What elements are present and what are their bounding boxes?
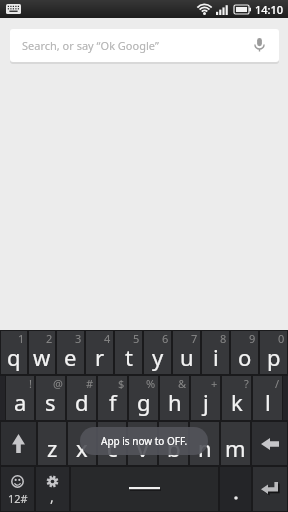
staticText: 4 [104, 331, 111, 346]
button[interactable]: Search, or say “Ok Google” [10, 29, 279, 62]
staticText: 6 [162, 331, 169, 346]
staticText: h [168, 387, 182, 417]
staticText: App is now to OFF. [101, 434, 188, 448]
staticText: x [76, 433, 88, 463]
button[interactable]: q [1, 331, 27, 374]
button[interactable]: f [98, 376, 127, 420]
staticText: % [146, 376, 156, 391]
button[interactable]: a [6, 376, 34, 420]
staticText: c [107, 433, 118, 463]
button[interactable]: x [68, 422, 96, 465]
staticText: 9 [249, 331, 256, 346]
button[interactable]: o [231, 331, 258, 374]
staticText: l [265, 387, 271, 417]
button[interactable]: w [29, 331, 55, 374]
staticText: y [152, 342, 164, 372]
button[interactable]: c [98, 422, 126, 465]
staticText: 5 [133, 331, 140, 346]
button[interactable]: k [222, 376, 251, 420]
staticText: @ [53, 376, 63, 391]
staticText: 3 [75, 331, 82, 346]
staticText: z [47, 433, 58, 463]
staticText: g [137, 387, 151, 417]
staticText: + [211, 376, 218, 391]
staticText: d [75, 387, 89, 417]
staticText: s [45, 387, 56, 417]
staticText: n [198, 433, 212, 463]
button[interactable] [252, 422, 287, 465]
button[interactable]: v [128, 422, 157, 465]
staticText: e [64, 342, 77, 372]
button[interactable]: y [144, 331, 171, 374]
staticText: t [125, 342, 133, 372]
staticText: / [275, 376, 280, 391]
staticText: w [33, 342, 51, 372]
button[interactable]: e [57, 331, 84, 374]
button[interactable]: n [190, 422, 219, 465]
staticText: # [86, 376, 94, 391]
staticText: v [137, 433, 149, 463]
staticText: 1 [18, 331, 25, 346]
staticText: b [167, 433, 181, 463]
staticText: a [14, 387, 27, 417]
button[interactable]: p [260, 331, 287, 374]
button[interactable] [71, 467, 218, 511]
button[interactable]: j [191, 376, 220, 420]
staticText: $ [118, 376, 125, 391]
staticText: f [109, 387, 117, 417]
button[interactable]: b [159, 422, 188, 465]
staticText: i [213, 342, 219, 372]
button[interactable]: App is now to OFF. [80, 427, 208, 455]
staticText: p [267, 342, 281, 372]
button[interactable]: d [67, 376, 96, 420]
button[interactable]: s [36, 376, 65, 420]
staticText: 8 [220, 331, 227, 346]
button[interactable]: l [253, 376, 282, 420]
staticText: , [50, 487, 54, 506]
staticText: u [180, 342, 194, 372]
staticText: 12# [8, 491, 28, 506]
staticText: j [203, 387, 209, 417]
button[interactable]: z [38, 422, 66, 465]
staticText: o [238, 342, 252, 372]
button[interactable]: h [160, 376, 189, 420]
button[interactable] [253, 467, 287, 511]
staticText: k [231, 387, 243, 417]
staticText: & [178, 376, 187, 391]
button[interactable]: 12# [1, 467, 34, 511]
button[interactable]: i [202, 331, 229, 374]
button[interactable] [1, 422, 36, 465]
staticText: Search, or say “Ok Google” [22, 38, 159, 53]
staticText: r [95, 342, 105, 372]
button[interactable]: t [115, 331, 142, 374]
staticText: ? [244, 376, 249, 391]
button[interactable]: u [173, 331, 200, 374]
staticText: q [7, 342, 21, 372]
button[interactable]: m [221, 422, 250, 465]
button[interactable]: g [129, 376, 158, 420]
button[interactable]: r [86, 331, 113, 374]
staticText: 0 [278, 331, 285, 346]
staticText: 2 [46, 331, 53, 346]
staticText: m [225, 433, 246, 463]
button[interactable] [220, 467, 251, 511]
button[interactable]: , [36, 467, 69, 511]
staticText: 14:10 [255, 2, 284, 17]
staticText: ! [29, 376, 32, 391]
staticText: 7 [191, 331, 198, 346]
